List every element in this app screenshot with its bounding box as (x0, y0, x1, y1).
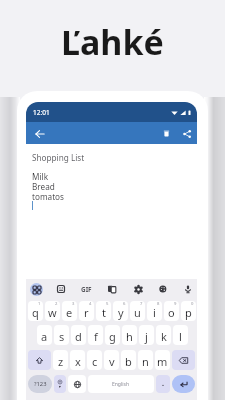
staticText: 5 (106, 301, 109, 307)
staticText: English (112, 381, 130, 388)
button[interactable]: Share (178, 125, 195, 142)
staticText: d (75, 329, 82, 344)
button[interactable]: c (87, 350, 102, 370)
button[interactable]: t (96, 301, 111, 321)
staticText: Milk Bread tomatos (32, 171, 64, 202)
staticText: Ľahké (61, 19, 164, 65)
button[interactable]: Keyboard modes (30, 283, 43, 296)
staticText: f (94, 329, 98, 344)
staticText: o (168, 305, 175, 320)
button[interactable]: u (130, 301, 145, 321)
staticText: k (161, 329, 167, 344)
staticText: 2 (55, 301, 58, 307)
staticText: y (118, 305, 124, 320)
button[interactable]: Stickers (54, 282, 68, 296)
staticText: 6 (123, 301, 126, 307)
staticText: 1 (38, 301, 41, 307)
button[interactable]: f (88, 325, 103, 345)
button[interactable]: Backspace (172, 350, 195, 370)
button[interactable]: a (37, 325, 52, 345)
button[interactable]: q (28, 301, 43, 321)
staticText: g (109, 329, 116, 344)
staticText: ?123 (34, 380, 47, 388)
staticText: 3 (72, 301, 75, 307)
button[interactable]: Delete (158, 125, 175, 142)
staticText: l (179, 329, 182, 344)
staticText: x (75, 354, 81, 369)
button[interactable]: English (88, 375, 154, 393)
button[interactable]: n (138, 350, 153, 370)
button[interactable]: Settings (131, 282, 145, 296)
button[interactable]: i (147, 301, 162, 321)
button[interactable]: h (122, 325, 137, 345)
button[interactable]: p (181, 301, 196, 321)
button[interactable]: k (156, 325, 171, 345)
button[interactable]: r (79, 301, 94, 321)
staticText: n (142, 354, 149, 369)
button[interactable]: w (45, 301, 60, 321)
button[interactable]: z (53, 350, 68, 370)
button[interactable]: GIF (79, 282, 93, 296)
staticText: r (84, 305, 89, 320)
staticText: p (185, 305, 192, 320)
button[interactable]: v (104, 350, 119, 370)
button[interactable]: ?123 (28, 375, 52, 393)
staticText: 8 (157, 301, 160, 307)
staticText: s (59, 329, 65, 344)
button[interactable]: b (121, 350, 136, 370)
staticText: 7 (140, 301, 143, 307)
button[interactable]: Clipboard (105, 282, 119, 296)
staticText: Shopping List (32, 152, 85, 163)
staticText: e (66, 305, 73, 320)
button[interactable]: d (71, 325, 86, 345)
button[interactable]: Language (68, 375, 86, 393)
staticText: h (126, 329, 133, 344)
button[interactable]: j (139, 325, 154, 345)
button[interactable]: y (113, 301, 128, 321)
button[interactable]: m (155, 350, 170, 370)
staticText: t (102, 305, 106, 320)
staticText: w (48, 305, 57, 320)
button[interactable]: g (105, 325, 120, 345)
staticText: u (134, 305, 141, 320)
button[interactable]: Theme (156, 282, 170, 296)
button[interactable]: o (164, 301, 179, 321)
staticText: GIF (81, 285, 92, 294)
button[interactable]: e (62, 301, 77, 321)
staticText: 9 (174, 301, 177, 307)
staticText: c (92, 354, 98, 369)
button[interactable]: Shift (28, 350, 51, 370)
staticText: m (157, 354, 168, 369)
button[interactable]: l (173, 325, 188, 345)
button[interactable]: Back (30, 124, 49, 143)
button[interactable]: Enter (172, 375, 195, 393)
staticText: z (58, 354, 64, 369)
staticText: i (153, 305, 156, 320)
button[interactable]: x (70, 350, 85, 370)
button[interactable] (156, 375, 170, 393)
button[interactable]: s (54, 325, 69, 345)
staticText: a (41, 329, 48, 344)
staticText: b (125, 354, 132, 369)
staticText: 4 (89, 301, 92, 307)
staticText: q (32, 305, 39, 320)
staticText: v (109, 354, 115, 369)
button[interactable] (54, 375, 66, 393)
button[interactable]: Voice input (181, 282, 195, 296)
staticText: j (145, 329, 148, 344)
staticText: 12:01 (33, 108, 50, 117)
staticText: 0 (191, 301, 194, 307)
